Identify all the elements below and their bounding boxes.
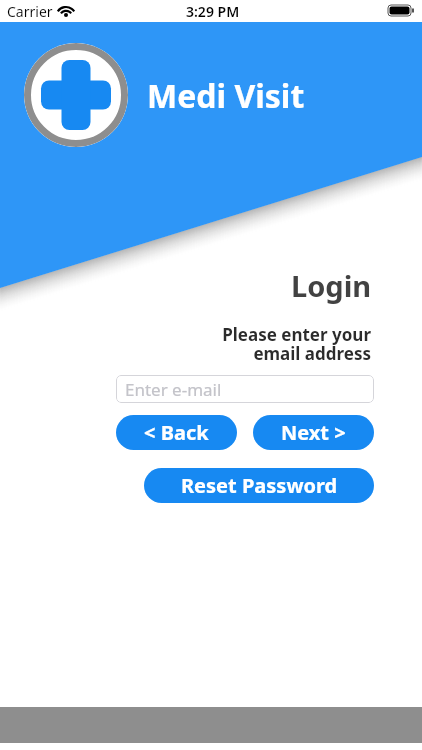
staticText: Please enter your email address [222,323,371,365]
staticText: Carrier [7,2,53,21]
staticText: 3:29 PM [186,2,240,21]
button[interactable]: < Back [116,415,237,450]
button[interactable]: Enter e-mail [116,375,374,403]
staticText: Next > [281,419,346,446]
button[interactable]: Reset Password [144,468,374,503]
staticText: Enter e-mail [125,378,222,401]
staticText: < Back [144,419,209,446]
staticText: Login [291,266,372,305]
staticText: Medi Visit [147,74,305,118]
staticText: Reset Password [181,472,338,499]
button[interactable]: Next > [253,415,374,450]
